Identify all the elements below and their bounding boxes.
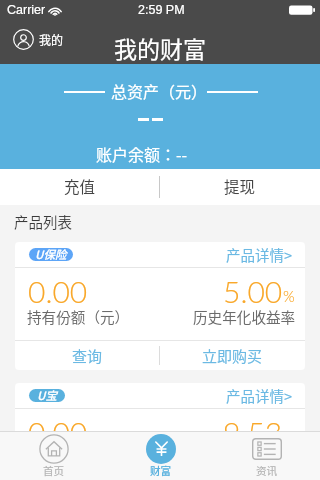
staticText: 资讯 bbox=[256, 463, 278, 478]
button[interactable]: 提现 bbox=[160, 169, 320, 205]
button[interactable]: U宝 bbox=[29, 385, 65, 406]
staticText: 立即购买 bbox=[202, 345, 263, 367]
button[interactable]: 产品详情> bbox=[208, 242, 293, 267]
staticText: 持有份额（元） bbox=[27, 306, 130, 327]
other: 资讯 bbox=[252, 438, 282, 460]
staticText: % bbox=[283, 428, 295, 446]
other: 首页 bbox=[39, 434, 69, 464]
staticText: 9.53 bbox=[223, 414, 283, 450]
staticText: 产品详情> bbox=[226, 244, 293, 265]
staticText: 我的 bbox=[39, 31, 64, 48]
staticText: 2:59 PM bbox=[138, 3, 185, 17]
staticText: 0.00 bbox=[28, 414, 88, 450]
other: 财富 bbox=[146, 434, 176, 464]
staticText: 产品详情> bbox=[226, 385, 293, 406]
button[interactable]: 充值 bbox=[0, 169, 159, 205]
staticText: 5.00 bbox=[223, 273, 283, 309]
staticText: 持有份额（元） bbox=[27, 447, 130, 468]
staticText: 账户余额：-- bbox=[96, 142, 188, 165]
staticText: 历史年化收益率 bbox=[193, 447, 296, 468]
button[interactable]: 查询 bbox=[15, 341, 159, 370]
button[interactable]: U保险 bbox=[29, 244, 73, 265]
staticText: 充值 bbox=[64, 175, 96, 197]
button[interactable]: 我的 bbox=[9, 26, 67, 53]
staticText: U宝 bbox=[37, 387, 57, 404]
staticText: 首页 bbox=[43, 463, 65, 478]
staticText: 产品列表 bbox=[14, 211, 72, 232]
button[interactable]: 资讯 bbox=[214, 432, 320, 480]
staticText: 提现 bbox=[224, 175, 256, 197]
staticText: 总资产（元） bbox=[111, 79, 208, 102]
staticText: U保险 bbox=[35, 246, 67, 263]
staticText: 查询 bbox=[72, 345, 103, 367]
button[interactable]: 立即购买 bbox=[160, 341, 305, 370]
staticText: 历史年化收益率 bbox=[193, 306, 296, 327]
staticText: 财富 bbox=[150, 463, 172, 478]
staticText: Carrier bbox=[7, 3, 46, 17]
button[interactable]: 产品详情> bbox=[208, 383, 293, 408]
button[interactable]: 首页 bbox=[0, 432, 107, 480]
button[interactable]: 财富 bbox=[107, 432, 214, 480]
staticText: 0.00 bbox=[28, 273, 88, 309]
staticText: % bbox=[283, 287, 295, 305]
staticText: 我的财富 bbox=[114, 31, 206, 64]
